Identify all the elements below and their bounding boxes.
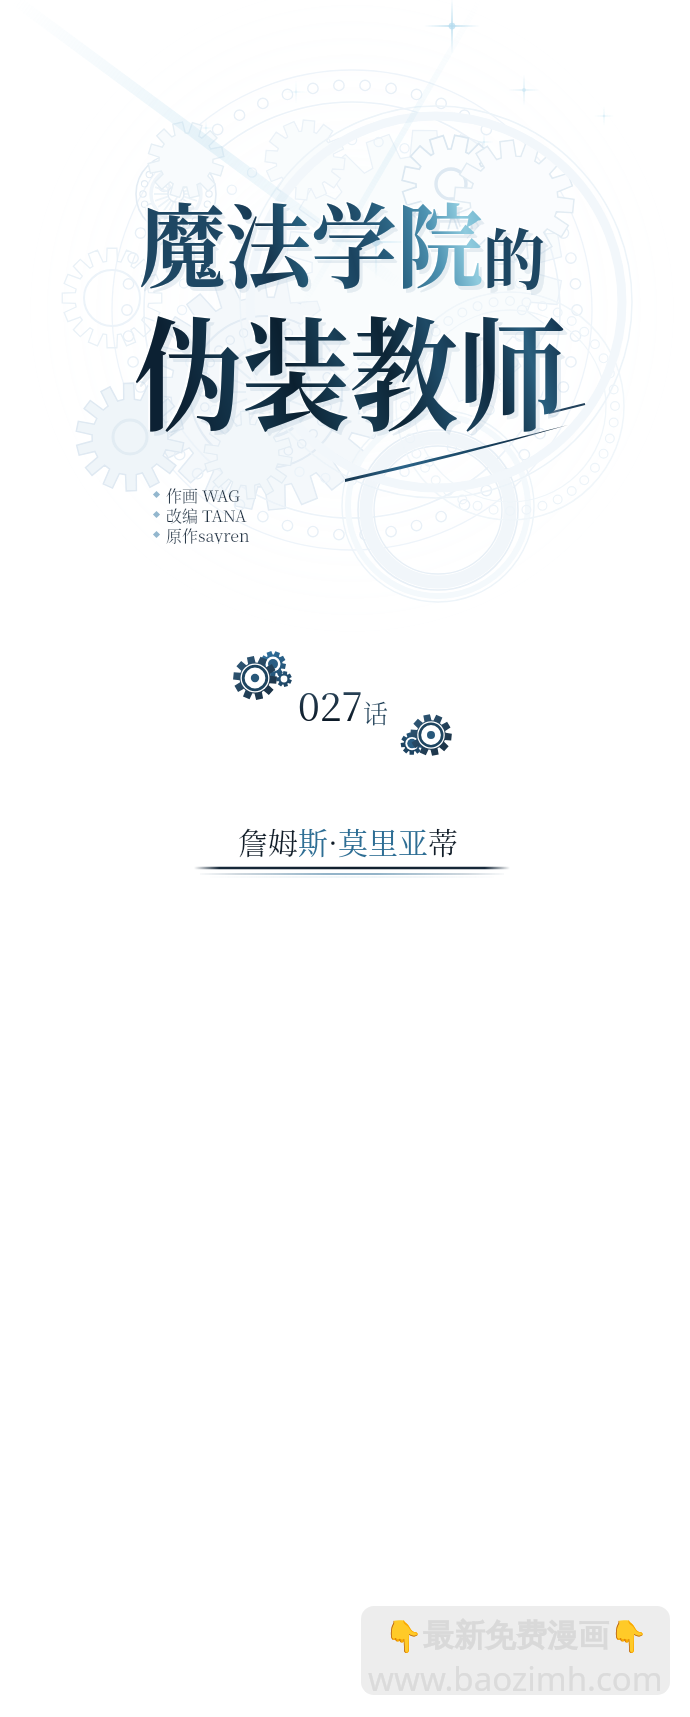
staticText: 詹姆 <box>238 819 298 862</box>
staticText: 魔法学院 <box>137 173 481 304</box>
staticText: 👇 <box>609 1618 648 1654</box>
staticText: 伪装教师 <box>138 284 571 459</box>
staticText: · <box>328 819 338 862</box>
staticText: 话 <box>363 694 389 730</box>
staticText: 斯 <box>298 819 328 862</box>
button[interactable]: www.baozimh.com <box>361 1606 670 1695</box>
staticText: 作画 WAG <box>166 484 240 504</box>
staticText: www.baozimh.com <box>368 1656 663 1695</box>
staticText: 最新免费漫画 <box>423 1616 609 1655</box>
staticText: 蒂 <box>428 819 458 862</box>
staticText: 的 <box>486 211 550 308</box>
staticText: 027 <box>298 676 363 732</box>
staticText: 伪装教师 <box>134 280 567 455</box>
staticText: 莫里亚 <box>338 819 428 862</box>
staticText: 魔法学院 <box>142 179 486 310</box>
staticText: 改编 TANA <box>166 504 247 524</box>
staticText: 伪装教师 <box>132 278 565 453</box>
staticText: 👇 <box>384 1618 423 1654</box>
staticText: 的 <box>483 209 546 303</box>
staticText: 魔法学院 <box>139 175 483 306</box>
staticText: 的 <box>481 207 544 301</box>
staticText: 原作sayren <box>166 524 250 544</box>
